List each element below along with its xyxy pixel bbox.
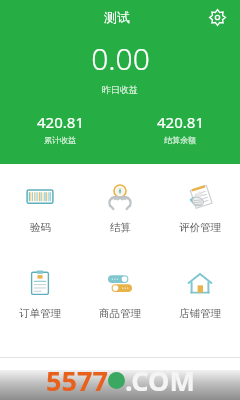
button[interactable]: 420.81 [0, 112, 120, 145]
staticText: 420.81 [37, 112, 84, 132]
staticText: 累计收益 [44, 135, 76, 145]
button[interactable]: 店铺管理 [160, 264, 240, 324]
button[interactable]: 结算 [80, 178, 160, 238]
staticText: 5577 [46, 362, 108, 399]
button[interactable]: 订单管理 [0, 264, 80, 324]
staticText: 结算 [110, 221, 131, 234]
button[interactable]: 商品管理 [80, 264, 160, 324]
staticText: 评价管理 [179, 221, 221, 234]
button[interactable]: 评价管理 [160, 178, 240, 238]
staticText: 420.81 [157, 112, 204, 132]
staticText: .COM [125, 362, 195, 399]
staticText: 订单管理 [19, 307, 61, 320]
button[interactable]: 验码 [0, 178, 80, 238]
staticText: 结算余额 [164, 135, 196, 145]
staticText: 店铺管理 [179, 307, 221, 320]
button[interactable]: Settings [204, 4, 230, 30]
staticText: 验码 [30, 221, 51, 234]
button[interactable]: 420.81 [120, 112, 240, 145]
staticText: 昨日收益 [102, 84, 138, 95]
staticText: 0.00 [91, 38, 150, 79]
staticText: 测试 [104, 9, 130, 25]
staticText: 商品管理 [99, 307, 141, 320]
